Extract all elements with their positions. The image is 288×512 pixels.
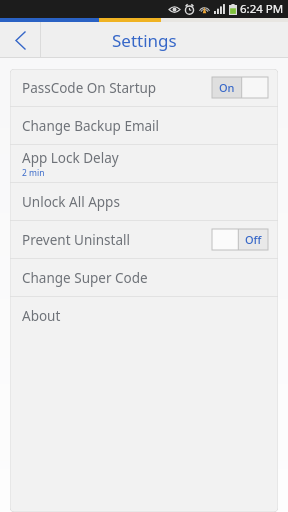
button[interactable]: Back [0, 22, 40, 58]
button[interactable]: PassCode On Startup [10, 69, 278, 106]
staticText: Settings [112, 29, 177, 52]
button[interactable]: Unlock All Apps [10, 183, 278, 220]
button[interactable]: Change Super Code [10, 259, 278, 296]
staticText: Prevent Uninstall [22, 231, 130, 249]
button[interactable]: App Lock Delay [10, 145, 278, 182]
staticText: Change Backup Email [22, 117, 160, 135]
staticText: App Lock Delay [22, 149, 119, 167]
button[interactable]: About [10, 297, 278, 334]
staticText: 2 min [22, 167, 45, 179]
staticText: About [22, 307, 61, 325]
button[interactable]: PassCode On Startup toggle, On [212, 77, 268, 98]
staticText: On [219, 80, 235, 95]
staticText: Change Super Code [22, 269, 148, 287]
staticText: Off [245, 232, 262, 247]
button[interactable]: Prevent Uninstall toggle, Off [212, 229, 268, 250]
staticText: 6:24 PM [240, 1, 284, 17]
button[interactable]: Prevent Uninstall [10, 221, 278, 258]
staticText: PassCode On Startup [22, 79, 157, 97]
button[interactable]: Change Backup Email [10, 107, 278, 144]
staticText: Unlock All Apps [22, 193, 120, 211]
